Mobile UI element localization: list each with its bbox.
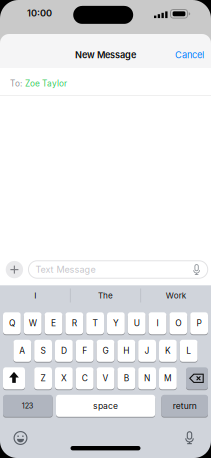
- button[interactable]: O: [169, 312, 187, 334]
- staticText: N: [144, 373, 150, 383]
- button[interactable]: D: [55, 340, 73, 362]
- staticText: K: [165, 346, 171, 356]
- staticText: R: [72, 318, 77, 328]
- staticText: Text Message: [36, 264, 96, 275]
- button[interactable]: Emoji: [13, 431, 27, 445]
- button[interactable]: Text Message: [28, 261, 208, 278]
- button[interactable]: K: [159, 340, 177, 362]
- button[interactable]: return: [161, 395, 208, 417]
- staticText: A: [19, 346, 25, 356]
- button[interactable]: Add attachment: [6, 261, 23, 278]
- button[interactable]: N: [138, 367, 156, 389]
- staticText: X: [61, 373, 67, 383]
- staticText: Y: [113, 318, 119, 328]
- button[interactable]: G: [97, 340, 114, 362]
- staticText: New Message: [75, 49, 136, 60]
- button[interactable]: X: [55, 367, 73, 389]
- staticText: L: [186, 346, 191, 356]
- staticText: To:: [10, 78, 22, 88]
- button[interactable]: I: [149, 312, 166, 334]
- button[interactable]: space: [56, 395, 155, 417]
- staticText: O: [175, 318, 181, 328]
- staticText: F: [82, 346, 87, 356]
- staticText: P: [197, 318, 202, 328]
- staticText: E: [51, 318, 56, 328]
- button[interactable]: P: [190, 312, 208, 334]
- staticText: B: [124, 373, 129, 383]
- button[interactable]: C: [76, 367, 94, 389]
- button[interactable]: S: [34, 340, 52, 362]
- button[interactable]: B: [117, 367, 135, 389]
- button[interactable]: Q: [3, 312, 21, 334]
- button[interactable]: Dictation: [183, 431, 195, 445]
- button[interactable]: L: [180, 340, 198, 362]
- staticText: T: [93, 318, 98, 328]
- staticText: V: [102, 373, 108, 383]
- button[interactable]: R: [65, 312, 83, 334]
- button[interactable]: Cancel: [175, 49, 204, 60]
- staticText: S: [41, 346, 46, 356]
- button[interactable]: Work: [143, 285, 209, 305]
- staticText: H: [123, 346, 129, 356]
- button[interactable]: 123: [3, 395, 53, 417]
- button[interactable]: J: [138, 340, 156, 362]
- staticText: I: [34, 291, 36, 300]
- staticText: 10:00: [27, 8, 52, 19]
- button[interactable]: The: [72, 285, 138, 305]
- staticText: Work: [166, 291, 186, 300]
- staticText: W: [29, 318, 37, 328]
- button[interactable]: U: [128, 312, 146, 334]
- staticText: Zoe Taylor: [25, 78, 67, 88]
- staticText: D: [61, 346, 67, 356]
- staticText: return: [173, 401, 197, 411]
- staticText: U: [134, 318, 140, 328]
- button[interactable]: F: [76, 340, 94, 362]
- staticText: Z: [41, 373, 46, 383]
- button[interactable]: To:: [10, 74, 211, 92]
- button[interactable]: M: [159, 367, 177, 389]
- staticText: J: [145, 346, 150, 356]
- button[interactable]: Z: [34, 367, 52, 389]
- staticText: G: [102, 346, 108, 356]
- button[interactable]: Delete: [186, 367, 208, 389]
- button[interactable]: T: [86, 312, 104, 334]
- button[interactable]: Shift: [3, 367, 25, 389]
- button[interactable]: A: [13, 340, 31, 362]
- button[interactable]: E: [45, 312, 62, 334]
- staticText: Cancel: [175, 49, 204, 60]
- button[interactable]: H: [117, 340, 135, 362]
- button[interactable]: W: [24, 312, 42, 334]
- button[interactable]: I: [2, 285, 68, 305]
- staticText: M: [164, 373, 172, 383]
- staticText: 123: [22, 401, 34, 410]
- staticText: Q: [9, 318, 15, 328]
- staticText: space: [93, 401, 118, 411]
- staticText: C: [82, 373, 88, 383]
- staticText: The: [98, 291, 113, 300]
- staticText: I: [156, 318, 158, 328]
- button[interactable]: V: [97, 367, 114, 389]
- button[interactable]: Y: [107, 312, 125, 334]
